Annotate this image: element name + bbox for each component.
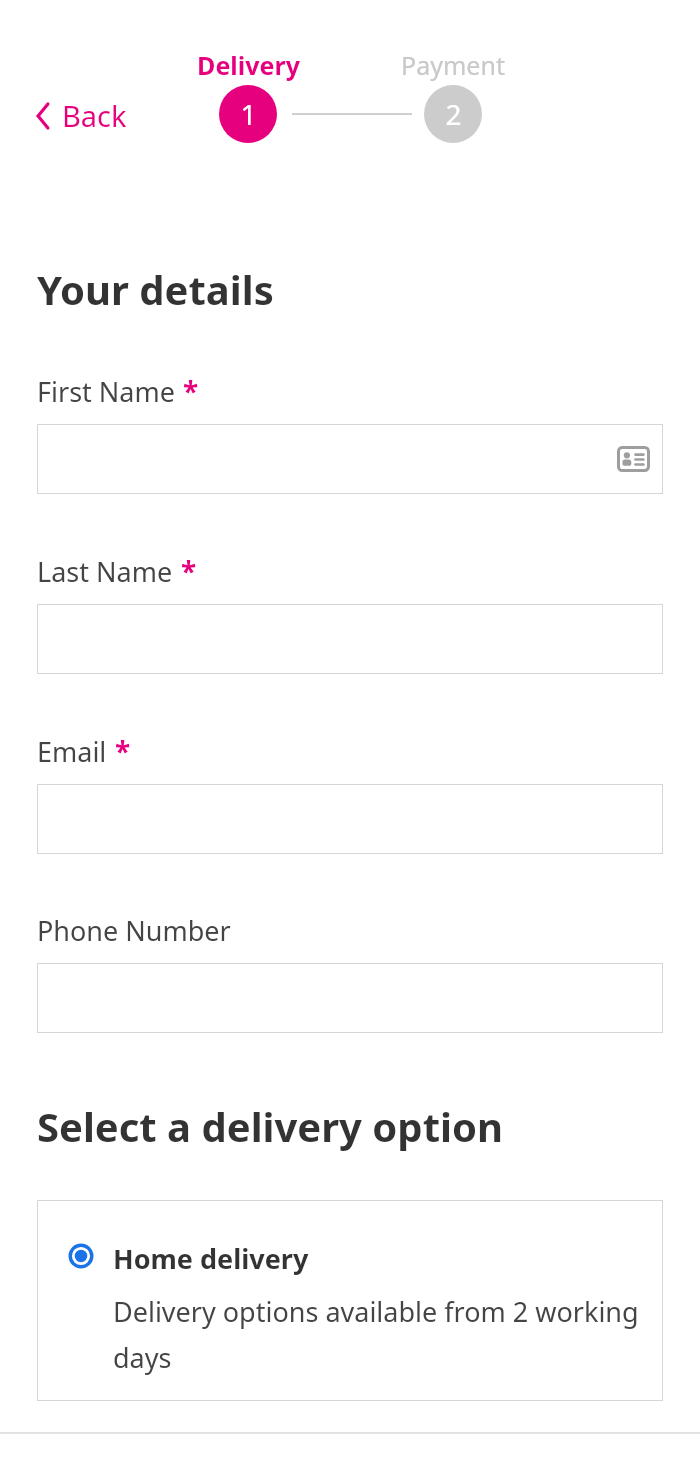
staticText: * (115, 732, 131, 770)
button[interactable]: Home delivery (37, 1200, 663, 1401)
staticText: 1 (240, 95, 257, 133)
staticText: Your details (37, 262, 274, 316)
button[interactable] (37, 424, 663, 494)
button[interactable] (37, 784, 663, 854)
button[interactable]: 1 (219, 85, 277, 143)
button[interactable] (37, 604, 663, 674)
staticText: Back (62, 96, 127, 135)
staticText: * (183, 372, 199, 410)
staticText: Home delivery (113, 1240, 309, 1277)
staticText: 2 (445, 95, 462, 133)
button[interactable]: Back (30, 92, 133, 139)
button[interactable]: 2 (424, 85, 482, 143)
staticText: Email (37, 733, 107, 770)
staticText: Last Name (37, 553, 173, 590)
staticText: Phone Number (37, 912, 231, 949)
staticText: First Name (37, 373, 175, 410)
staticText: Payment (401, 48, 505, 82)
staticText: Delivery options available from 2 workin… (113, 1293, 643, 1376)
staticText: Select a delivery option (37, 1099, 503, 1153)
staticText: * (181, 552, 197, 590)
button[interactable] (37, 963, 663, 1033)
staticText: Delivery (197, 48, 300, 82)
